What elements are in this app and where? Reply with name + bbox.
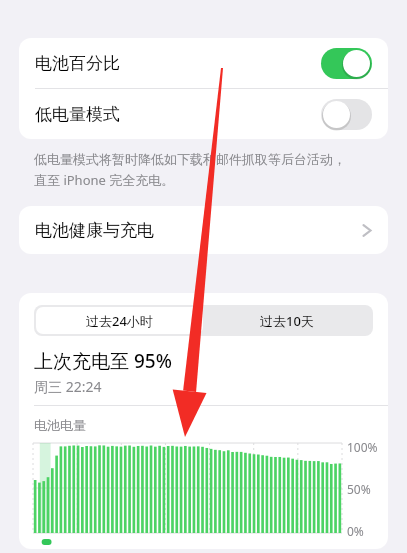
staticText: 电池百分比: [35, 53, 120, 74]
button[interactable]: Off: [321, 99, 372, 130]
staticText: 电池健康与充电: [35, 220, 154, 241]
staticText: 过去24小时: [86, 312, 153, 330]
button[interactable]: 电池健康与充电: [19, 206, 388, 254]
button[interactable]: 电池百分比: [19, 38, 388, 88]
staticText: 周三 22:24: [34, 377, 102, 396]
staticText: 电池电量: [34, 417, 86, 433]
staticText: 低电量模式将暂时降低如下载和邮件抓取等后台活动，: [34, 151, 346, 167]
staticText: 100%: [347, 439, 378, 455]
staticText: 0%: [347, 523, 364, 539]
staticText: 50%: [347, 481, 371, 497]
staticText: 过去10天: [260, 312, 314, 330]
staticText: 上次充电至 95%: [34, 348, 172, 374]
button[interactable]: 低电量模式: [19, 89, 388, 139]
other: Open: [362, 222, 372, 239]
staticText: 低电量模式: [35, 104, 120, 125]
button[interactable]: 过去24小时: [36, 307, 203, 334]
staticText: 直至 iPhone 完全充电。: [34, 171, 175, 189]
button[interactable]: On: [321, 48, 372, 79]
button[interactable]: 过去10天: [203, 307, 371, 334]
